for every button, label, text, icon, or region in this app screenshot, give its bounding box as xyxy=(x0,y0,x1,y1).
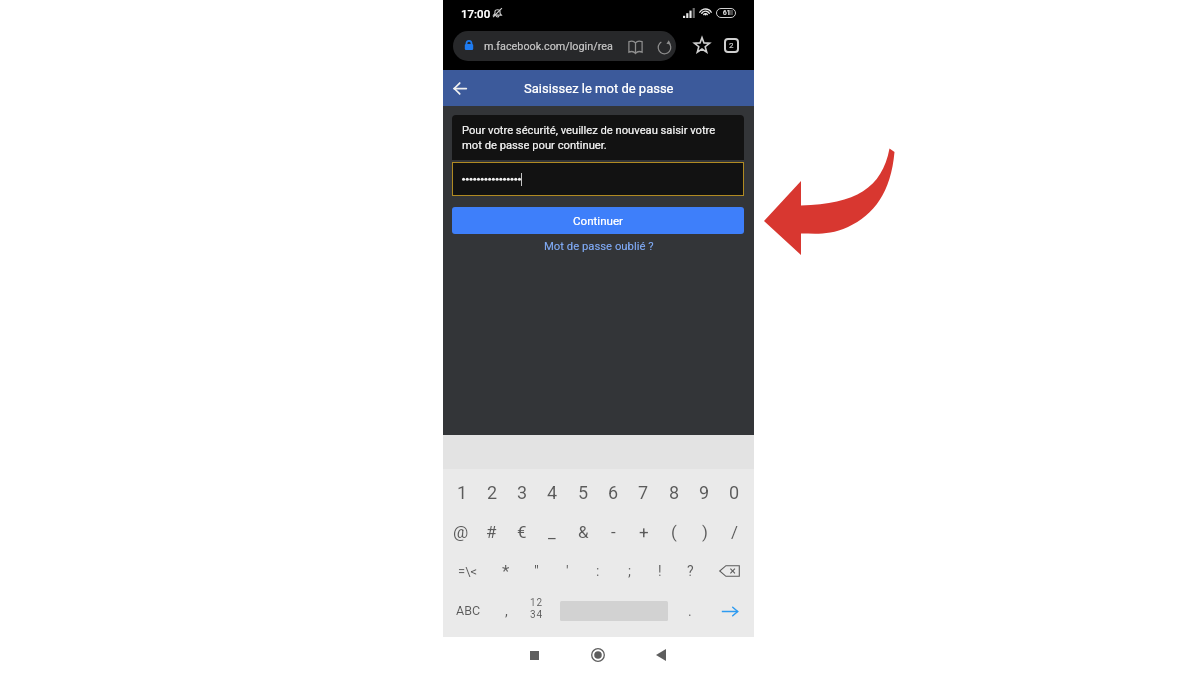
button[interactable]: ' xyxy=(552,551,582,591)
button[interactable]: 0 xyxy=(719,472,749,512)
button[interactable]: 9 xyxy=(689,472,719,512)
button[interactable]: Secure connection xyxy=(453,31,676,61)
button[interactable]: Backspace xyxy=(713,557,745,585)
button[interactable]: Number keypad xyxy=(522,595,550,623)
staticText: 7 xyxy=(638,482,649,503)
button[interactable]: Space xyxy=(560,596,668,626)
staticText: ; xyxy=(628,563,631,579)
button[interactable]: 1 xyxy=(447,472,477,512)
button[interactable]: 5 xyxy=(568,472,598,512)
staticText: Saisissez le mot de passe xyxy=(524,81,674,96)
button[interactable]: Enter xyxy=(714,597,746,625)
button[interactable]: Continuer xyxy=(452,207,744,234)
staticText: : xyxy=(596,563,600,579)
staticText: ' xyxy=(566,562,569,580)
button[interactable]: 8 xyxy=(659,472,689,512)
staticText: - xyxy=(611,522,616,542)
staticText: 0 xyxy=(729,482,740,503)
button[interactable]: 7 xyxy=(628,472,658,512)
staticText: 1 xyxy=(457,482,468,503)
button[interactable] xyxy=(452,162,744,196)
button[interactable]: € xyxy=(507,512,537,552)
staticText: ! xyxy=(658,563,662,579)
button[interactable]: =\< xyxy=(451,551,485,591)
staticText: ABC xyxy=(456,603,481,618)
staticText: 3 xyxy=(517,482,528,503)
button[interactable]: * xyxy=(491,551,521,591)
staticText: 4 xyxy=(547,482,558,503)
button[interactable]: : xyxy=(583,551,613,591)
button[interactable]: - xyxy=(598,512,628,552)
button[interactable]: Reload page xyxy=(657,40,672,55)
button[interactable]: Mot de passe oublié ? xyxy=(544,240,654,253)
button[interactable]: , xyxy=(491,591,521,631)
staticText: " xyxy=(534,562,539,580)
staticText: ? xyxy=(687,563,694,579)
staticText: 9 xyxy=(699,482,710,503)
staticText: 17:00 xyxy=(461,7,491,20)
staticText: 61 xyxy=(723,9,731,17)
button[interactable]: ? xyxy=(675,551,705,591)
button[interactable]: ( xyxy=(659,512,689,552)
staticText: 8 xyxy=(669,482,680,503)
staticText: Pour votre sécurité, veuillez de nouveau… xyxy=(462,124,735,151)
staticText: 2 xyxy=(487,482,498,503)
staticText: € xyxy=(517,522,527,542)
staticText: 34 xyxy=(530,609,543,621)
staticText: ( xyxy=(671,522,677,542)
button[interactable]: / xyxy=(720,512,750,552)
staticText: + xyxy=(639,522,649,542)
button[interactable]: " xyxy=(521,551,551,591)
button[interactable]: Bookmark xyxy=(688,31,716,59)
button[interactable]: _ xyxy=(537,512,567,552)
staticText: 5 xyxy=(578,482,589,503)
button[interactable]: Back xyxy=(648,642,674,668)
staticText: 12 xyxy=(530,597,543,609)
staticText: # xyxy=(486,522,497,542)
staticText: ) xyxy=(702,522,708,542)
button[interactable]: Open tabs xyxy=(717,31,745,59)
button[interactable]: Recent apps xyxy=(521,642,547,668)
staticText: * xyxy=(502,561,510,581)
staticText: _ xyxy=(548,522,556,542)
staticText: / xyxy=(731,522,739,542)
button[interactable]: 6 xyxy=(598,472,628,512)
button[interactable]: # xyxy=(476,512,506,552)
staticText: @ xyxy=(453,522,469,542)
button[interactable]: Reader mode xyxy=(628,40,643,54)
staticText: Continuer xyxy=(573,214,624,228)
staticText: 2 xyxy=(729,41,734,50)
button[interactable]: 4 xyxy=(537,472,567,512)
staticText: m.facebook.com/login/rea xyxy=(484,40,613,53)
button[interactable]: . xyxy=(675,591,705,631)
button[interactable]: & xyxy=(568,512,598,552)
staticText: 6 xyxy=(608,482,619,503)
staticText: =\< xyxy=(458,564,478,579)
button[interactable]: Back xyxy=(444,72,476,104)
other: Annotation arrow pointing left xyxy=(0,0,1200,675)
button[interactable]: ; xyxy=(614,551,644,591)
staticText: & xyxy=(578,522,589,542)
button[interactable]: @ xyxy=(446,512,476,552)
button[interactable]: 3 xyxy=(507,472,537,512)
staticText: , xyxy=(505,603,508,619)
staticText: . xyxy=(688,603,692,619)
button[interactable]: 2 xyxy=(477,472,507,512)
button[interactable]: ) xyxy=(690,512,720,552)
button[interactable]: ! xyxy=(645,551,675,591)
button[interactable]: ABC xyxy=(450,590,486,630)
button[interactable]: + xyxy=(629,512,659,552)
button[interactable]: Home xyxy=(585,642,611,668)
other: Secure connection xyxy=(464,38,474,52)
